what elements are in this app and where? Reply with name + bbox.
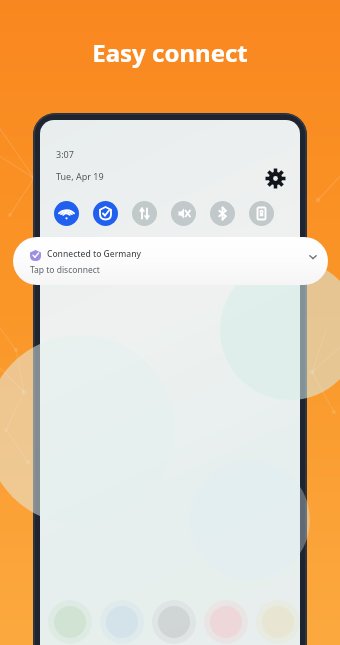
button[interactable]: Expand [305, 249, 321, 265]
button[interactable]: Bluetooth [210, 201, 235, 226]
staticText: 3:07 [56, 148, 74, 160]
staticText: Tue, Apr 19 [56, 170, 104, 182]
staticText: Easy connect [92, 36, 248, 69]
button[interactable]: Wi-Fi [54, 201, 79, 226]
staticText: Connected to Germany [47, 248, 141, 260]
button[interactable]: Settings [266, 169, 285, 188]
button[interactable]: VPN [93, 201, 118, 226]
button[interactable]: Auto rotate [249, 201, 274, 226]
button[interactable]: Mobile data [132, 201, 157, 226]
button[interactable]: Sound off [171, 201, 196, 226]
staticText: Tap to disconnect [30, 264, 100, 276]
button[interactable]: Connected to Germany [13, 237, 328, 285]
